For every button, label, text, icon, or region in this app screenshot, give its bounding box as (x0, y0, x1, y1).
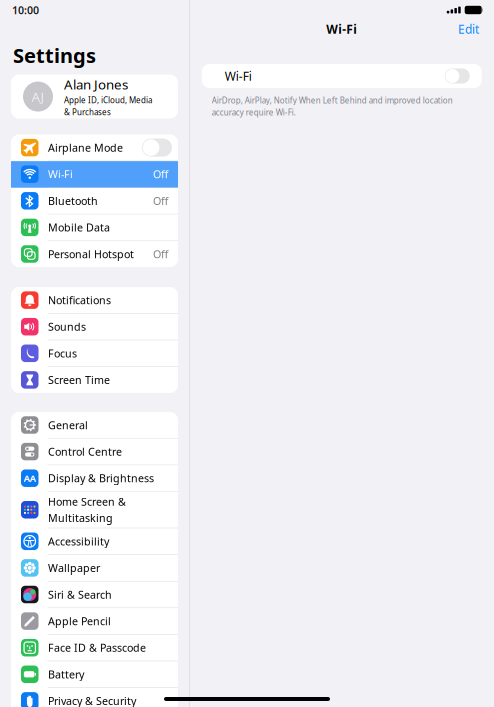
staticText: AirDrop, AirPlay, Notify When Left Behin… (212, 95, 453, 106)
staticText: Wi-Fi (225, 68, 252, 84)
button[interactable]: Battery (11, 661, 178, 688)
staticText: General (48, 418, 88, 432)
staticText: Wi-Fi (48, 167, 73, 181)
staticText: Display & Brightness (48, 471, 154, 485)
staticText: Wallpaper (48, 561, 100, 575)
button[interactable]: Focus (11, 340, 178, 367)
button[interactable]: Screen Time (11, 367, 178, 393)
button[interactable]: General (11, 412, 178, 439)
button[interactable]: Sounds (11, 314, 178, 340)
staticText: Screen Time (48, 373, 110, 387)
button[interactable]: Accessibility (11, 528, 178, 555)
button[interactable]: Privacy & Security (11, 688, 178, 707)
staticText: Control Centre (48, 444, 122, 459)
button[interactable]: AJ (11, 75, 178, 119)
staticText: Off (153, 194, 168, 208)
staticText: Off (153, 247, 168, 261)
staticText: Bluetooth (48, 194, 98, 208)
staticText: Off (153, 167, 168, 181)
button[interactable]: Bluetooth (11, 188, 178, 214)
staticText: & Purchases (64, 107, 111, 117)
staticText: Apple ID, iCloud, Media (64, 95, 152, 105)
button[interactable]: Apple Pencil (11, 608, 178, 635)
staticText: 10:00 (12, 3, 39, 17)
staticText: AA (24, 472, 36, 484)
staticText: Settings (13, 42, 96, 69)
button[interactable]: Wi-Fi (11, 161, 178, 188)
staticText: Alan Jones (64, 76, 128, 93)
staticText: Accessibility (48, 534, 109, 548)
staticText: AJ (31, 88, 44, 105)
staticText: Face ID & Passcode (48, 641, 146, 655)
button[interactable]: Control Centre (11, 439, 178, 465)
staticText: Notifications (48, 293, 111, 307)
button[interactable]: Siri & Search (11, 581, 178, 608)
button[interactable]: Edit (454, 18, 483, 40)
staticText: Siri & Search (48, 587, 112, 602)
button[interactable]: Notifications (11, 287, 178, 314)
staticText: Battery (48, 667, 84, 681)
button[interactable]: Mobile Data (11, 214, 178, 241)
staticText: Apple Pencil (48, 614, 111, 628)
button[interactable]: Wi-Fi (202, 64, 482, 88)
staticText: Focus (48, 346, 77, 360)
button[interactable]: AA (11, 465, 178, 492)
staticText: accuracy require Wi-Fi. (212, 107, 296, 118)
staticText: Mobile Data (48, 220, 110, 234)
staticText: Privacy & Security (48, 694, 136, 707)
staticText: Multitasking (48, 511, 113, 525)
staticText: Sounds (48, 320, 86, 334)
button[interactable]: Airplane Mode (11, 135, 178, 161)
staticText: Edit (458, 21, 479, 37)
staticText: Personal Hotspot (48, 247, 134, 261)
button[interactable]: Wallpaper (11, 555, 178, 581)
staticText: Wi-Fi (326, 21, 357, 37)
button[interactable]: Home Screen & (11, 492, 178, 528)
button[interactable]: Personal Hotspot (11, 241, 178, 267)
staticText: Airplane Mode (48, 140, 123, 155)
button[interactable]: Face ID & Passcode (11, 635, 178, 661)
staticText: Home Screen & (48, 495, 126, 509)
